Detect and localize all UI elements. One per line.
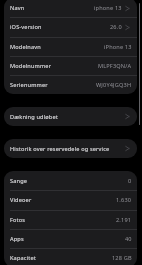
staticText: iOS-version <box>10 23 42 31</box>
staticText: Apps <box>10 235 24 243</box>
staticText: MLPF3QN/A <box>98 62 132 70</box>
other: Open <box>125 25 130 30</box>
staticText: 2.191 <box>116 216 132 224</box>
staticText: Modelnummer <box>10 62 52 70</box>
staticText: iPhone 13 <box>104 43 132 51</box>
other: Open <box>125 114 130 119</box>
button[interactable]: Fotos <box>4 210 137 229</box>
staticText: Videoer <box>10 196 32 204</box>
staticText: iphone 13 <box>94 4 122 12</box>
button[interactable]: Modelnavn <box>4 37 137 56</box>
button[interactable]: Serienummer <box>4 75 137 94</box>
button[interactable]: Kapacitet <box>4 248 137 265</box>
staticText: WJ0Y4JGQ3H <box>96 81 132 89</box>
button[interactable]: Apps <box>4 229 137 248</box>
button[interactable]: Navn <box>4 0 137 17</box>
staticText: Navn <box>10 4 25 12</box>
staticText: Historik over reservedele og service <box>10 145 110 153</box>
button[interactable]: Dækning udløbet <box>4 107 137 126</box>
staticText: 128 GB <box>112 254 132 262</box>
other: Open <box>125 6 130 11</box>
staticText: Serienummer <box>10 81 48 89</box>
button[interactable]: Modelnummer <box>4 56 137 75</box>
staticText: Kapacitet <box>10 254 36 262</box>
staticText: Fotos <box>10 216 26 224</box>
staticText: Dækning udløbet <box>10 113 58 121</box>
button[interactable]: iOS-version <box>4 17 137 36</box>
staticText: 1.630 <box>116 196 132 204</box>
button[interactable]: Historik over reservedele og service <box>4 139 137 158</box>
staticText: 26.0 <box>110 23 122 31</box>
other: Open <box>125 146 130 151</box>
staticText: 0 <box>128 177 132 185</box>
staticText: Sange <box>10 177 28 185</box>
button[interactable]: Sange <box>4 171 137 190</box>
staticText: Modelnavn <box>10 43 41 51</box>
staticText: 40 <box>125 235 132 243</box>
button[interactable]: Videoer <box>4 190 137 209</box>
